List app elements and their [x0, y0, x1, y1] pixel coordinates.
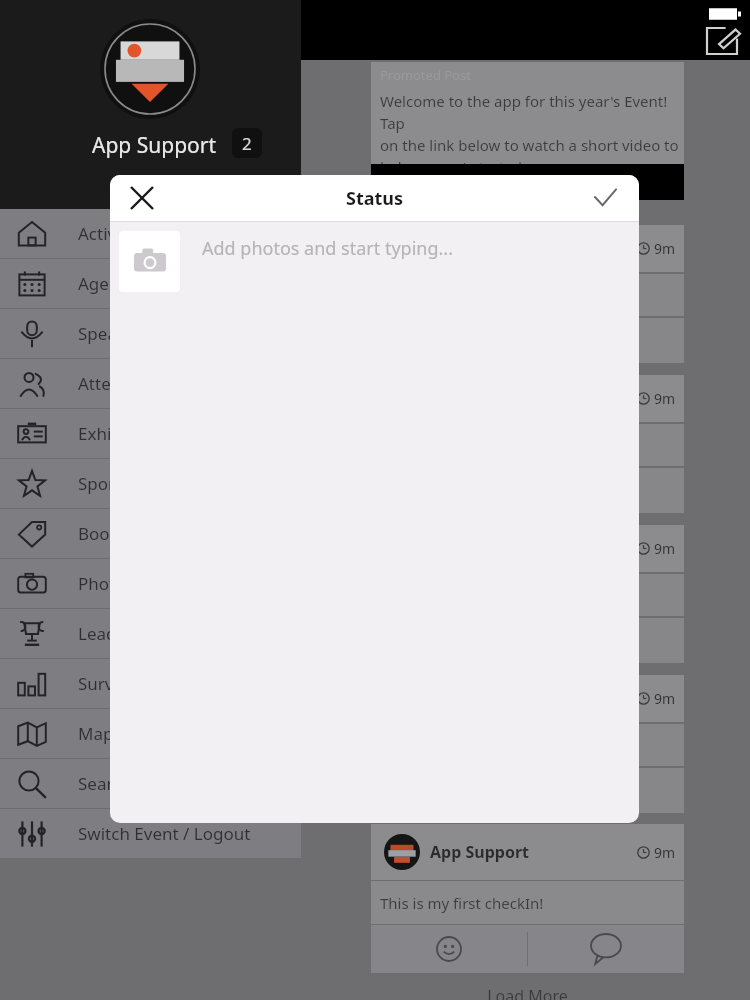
button[interactable]: Photos	[0, 559, 301, 608]
staticText: Agenda	[78, 272, 140, 295]
staticText: Activity	[78, 222, 136, 245]
button[interactable]: Speakers	[0, 309, 301, 358]
staticText: App Support	[92, 131, 217, 160]
staticText: Attendees	[78, 372, 160, 395]
staticText: Exhibitors	[78, 422, 158, 445]
button[interactable]: 2	[232, 128, 262, 158]
button[interactable]: Comment	[528, 925, 684, 973]
staticText: Load More	[371, 985, 684, 1000]
staticText: Add photos and start typing...	[202, 236, 453, 261]
staticText: Status	[346, 186, 404, 211]
staticText: This is my first checkIn!	[380, 893, 544, 913]
button[interactable]: Sponsors	[0, 459, 301, 508]
staticText: Photos	[78, 572, 134, 595]
button[interactable]: Switch Event / Logout	[0, 809, 301, 858]
staticText: 9m	[654, 239, 676, 258]
staticText: Welcome to the app for this year's Event…	[380, 91, 684, 164]
staticText: Sponsors	[78, 472, 153, 495]
button[interactable]: Like	[371, 925, 527, 973]
staticText: Leaderboard	[78, 622, 181, 645]
staticText: Search	[78, 772, 132, 795]
button[interactable]: Compose	[705, 26, 739, 56]
button[interactable]: Add photo	[119, 231, 180, 292]
staticText: 9m	[654, 689, 676, 708]
staticText: Map	[78, 722, 114, 745]
button[interactable]: Surveys	[0, 659, 301, 708]
staticText: Surveys	[78, 672, 140, 695]
staticText: Bookmarks	[78, 522, 169, 545]
other: Battery	[709, 5, 741, 23]
staticText: 9m	[654, 539, 676, 558]
button[interactable]: Exhibitors	[0, 409, 301, 458]
staticText: Speakers	[78, 322, 151, 345]
staticText: App Support	[430, 841, 529, 863]
button[interactable]: Bookmarks	[0, 509, 301, 558]
staticText: 2	[242, 132, 252, 155]
button[interactable]: Done	[585, 178, 625, 218]
staticText: Switch Event / Logout	[78, 822, 251, 845]
button[interactable]: Agenda	[0, 259, 301, 308]
button[interactable]: Leaderboard	[0, 609, 301, 658]
button[interactable]: Map	[0, 709, 301, 758]
button[interactable]: Activity	[0, 209, 301, 258]
staticText: 9m	[654, 843, 676, 862]
staticText: 9m	[654, 389, 676, 408]
button[interactable]: Attendees	[0, 359, 301, 408]
button[interactable]: Search	[0, 759, 301, 808]
staticText: Promoted Post	[380, 66, 471, 84]
button[interactable]: Close	[122, 178, 162, 218]
